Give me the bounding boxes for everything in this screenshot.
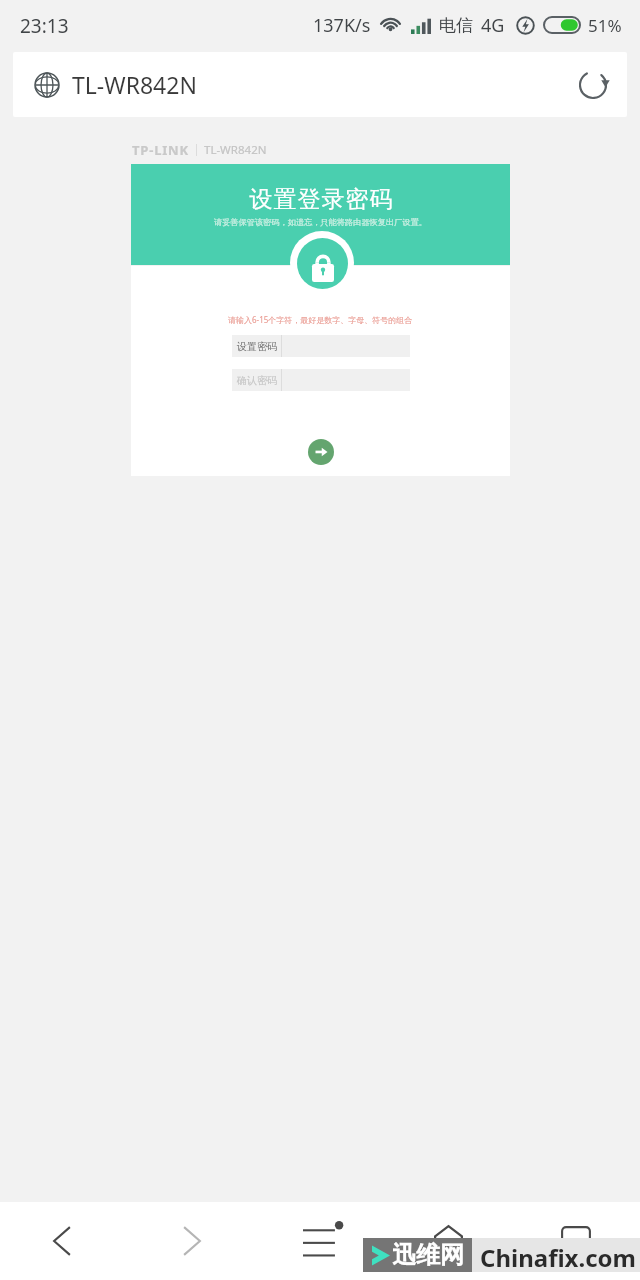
staticText: 迅维网 <box>392 1240 464 1270</box>
button[interactable]: Refresh page <box>570 62 616 108</box>
staticText: TL-WR842N <box>204 142 267 158</box>
button[interactable]: Tabs <box>531 1202 621 1280</box>
staticText: 请输入6-15个字符，最好是数字、字母、符号的组合 <box>228 314 413 325</box>
staticText: 1 <box>572 1232 581 1252</box>
staticText: TP-LINK <box>132 141 189 159</box>
staticText: TL-WR842N <box>72 69 197 100</box>
button[interactable]: Continue <box>308 439 334 465</box>
staticText: Chinafix.com <box>480 1241 636 1274</box>
staticText: 23:13 <box>20 13 69 39</box>
staticText: 设置登录密码 <box>249 185 393 214</box>
staticText: 51% <box>588 14 622 37</box>
staticText: 确认密码 <box>237 374 277 387</box>
staticText: 电信 <box>439 15 473 36</box>
staticText: 137K/s <box>313 13 371 38</box>
staticText: 4G <box>481 13 505 38</box>
button[interactable]: TL-WR842N <box>13 52 627 117</box>
button[interactable]: Home <box>403 1202 493 1280</box>
button[interactable]: Back <box>17 1202 107 1280</box>
button[interactable]: Menu <box>279 1202 369 1280</box>
button[interactable]: Forward <box>147 1202 237 1280</box>
staticText: 设置密码 <box>237 340 277 353</box>
staticText: 请妥善保管该密码，如遗忘，只能将路由器恢复出厂设置。 <box>214 217 427 227</box>
